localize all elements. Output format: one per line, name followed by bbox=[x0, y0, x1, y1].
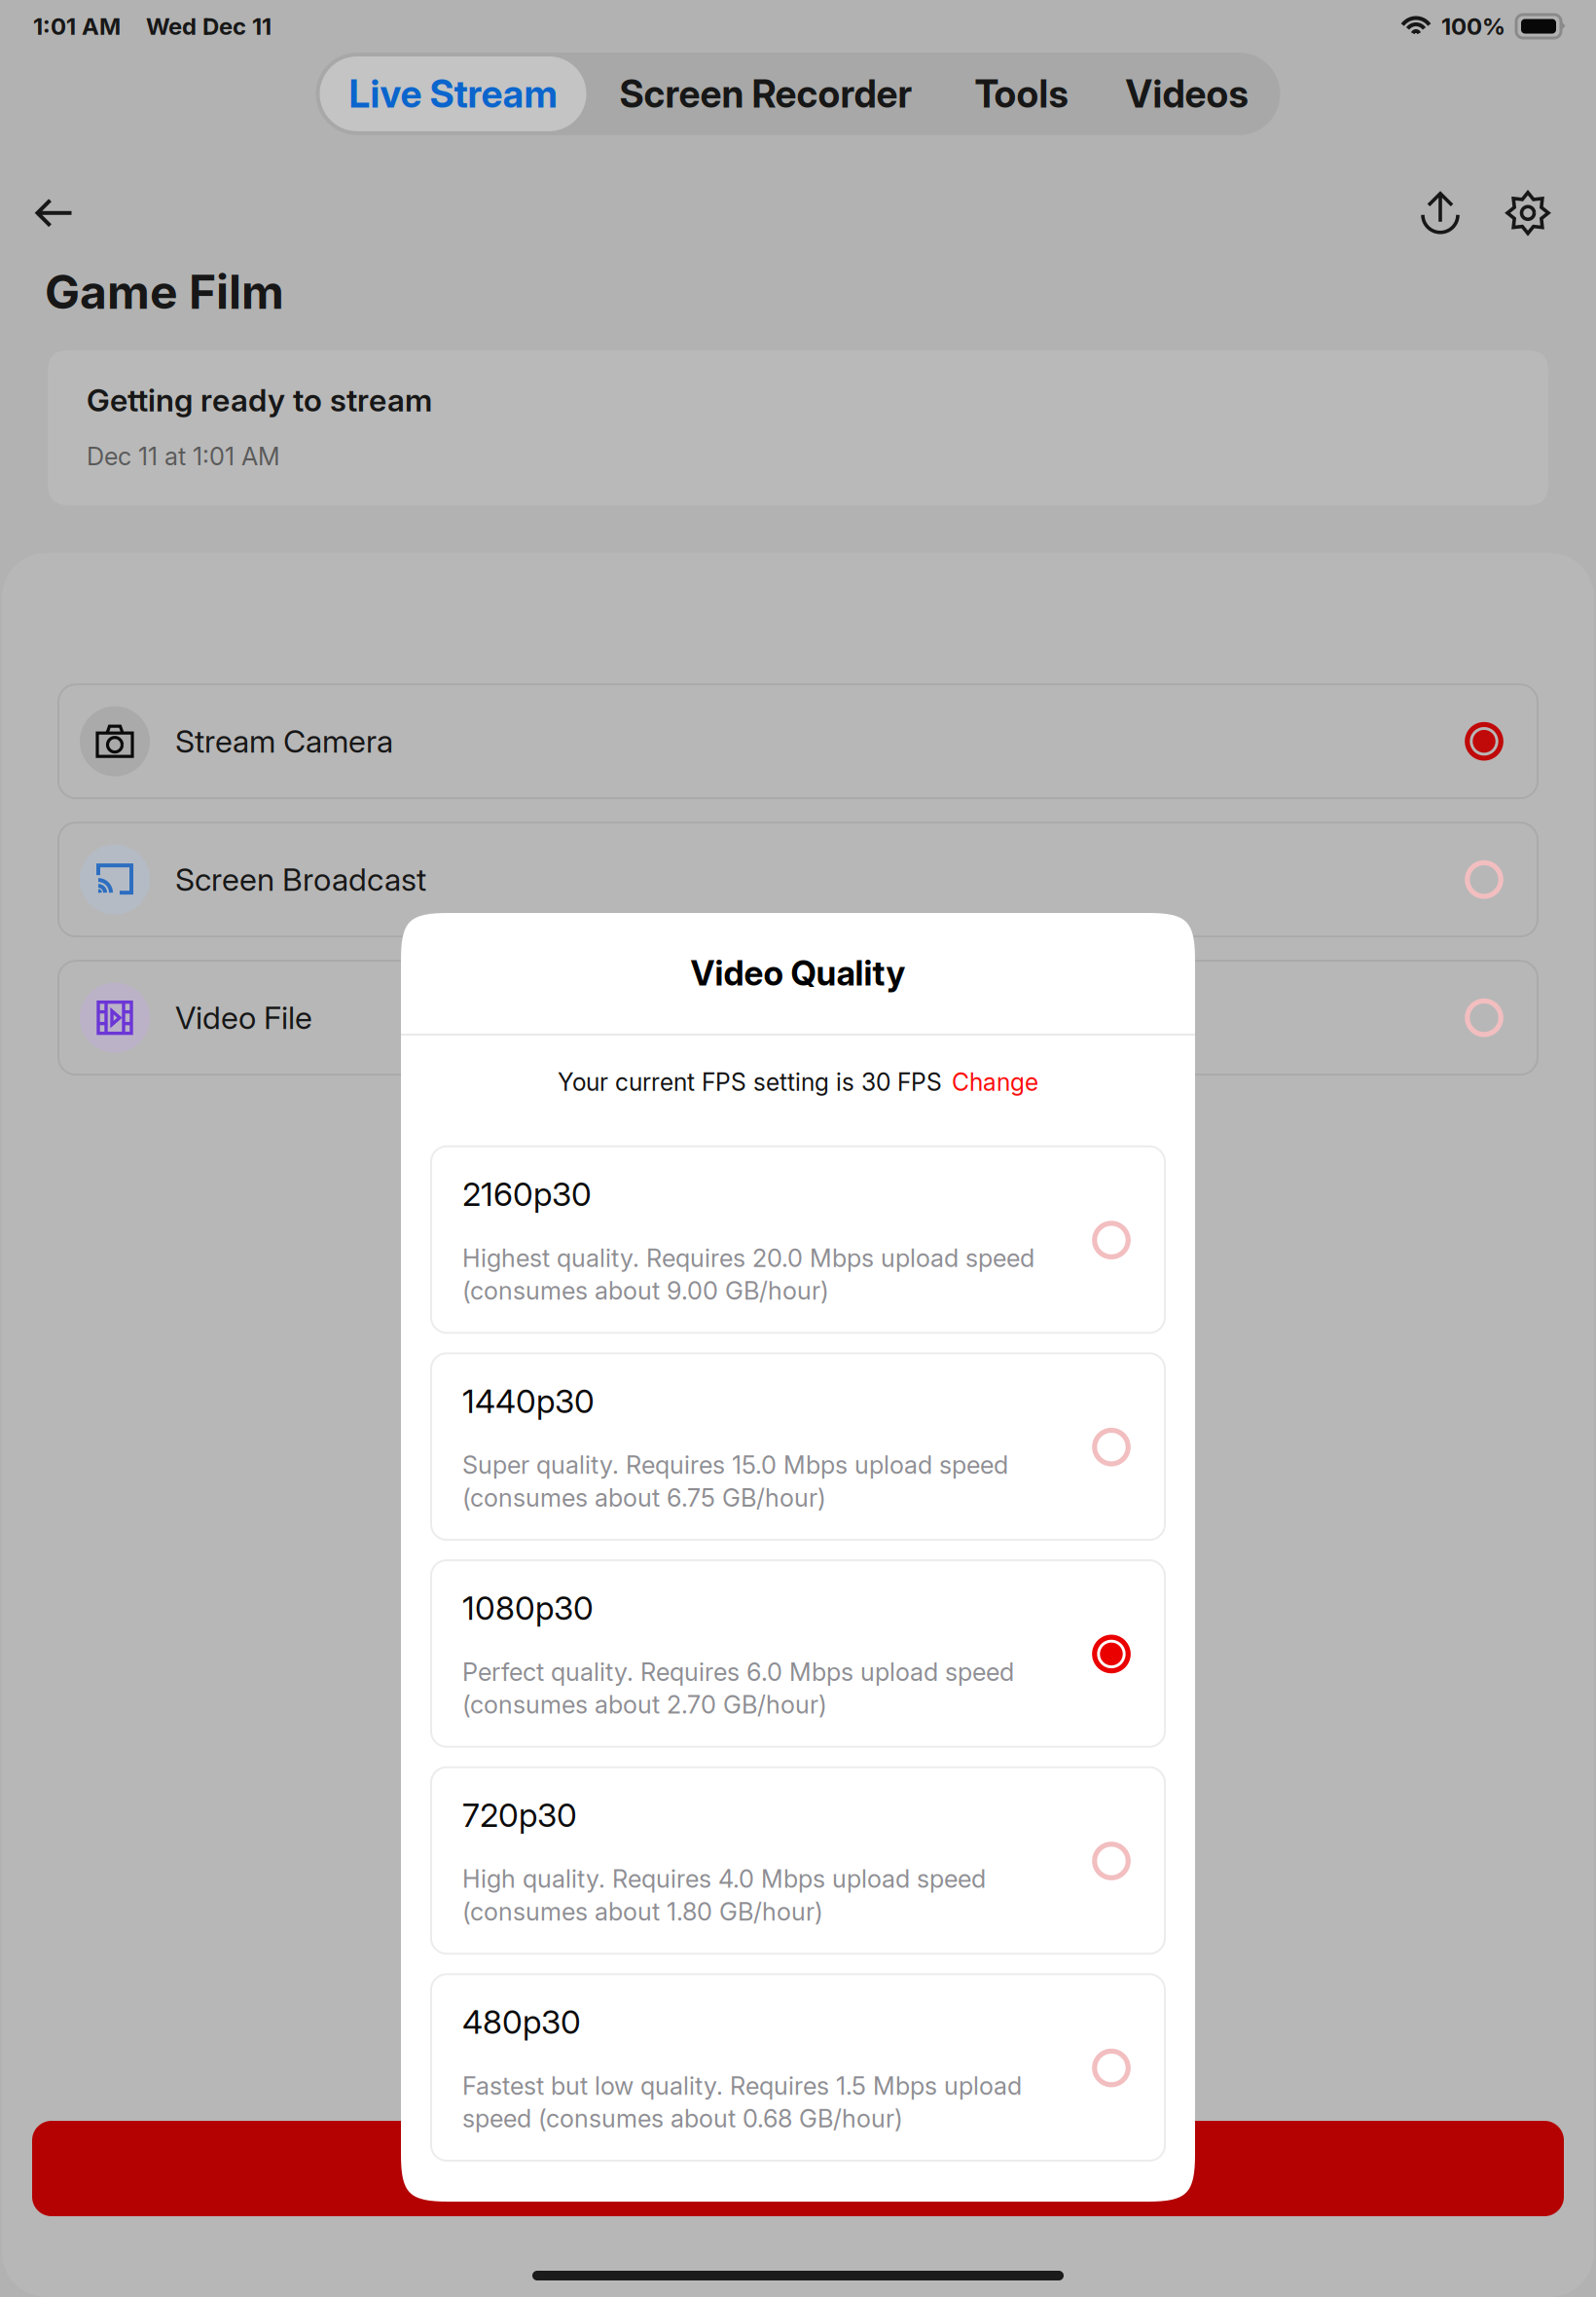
staticText: Screen Recorder bbox=[619, 71, 912, 117]
button[interactable]: Tools bbox=[945, 56, 1097, 131]
staticText: Videos bbox=[1125, 71, 1248, 117]
staticText: 1:01 AM bbox=[33, 12, 121, 40]
button[interactable]: 480p30 bbox=[431, 1974, 1165, 2161]
staticText: Dec 11 at 1:01 AM bbox=[87, 441, 280, 471]
button[interactable]: Screen Recorder bbox=[586, 56, 945, 131]
button[interactable]: Back bbox=[27, 186, 82, 240]
staticText: Wed Dec 11 bbox=[146, 12, 272, 40]
button[interactable] bbox=[0, 2121, 1596, 2216]
button[interactable]: Share bbox=[1413, 186, 1468, 240]
staticText: Highest quality. Requires 20.0 Mbps uplo… bbox=[462, 1243, 1034, 1273]
staticText: 2160p30 bbox=[462, 1175, 592, 1214]
staticText: Your current FPS setting is 30 FPS bbox=[558, 1068, 942, 1097]
button[interactable]: Screen Broadcast bbox=[58, 823, 1538, 937]
staticText: 1080p30 bbox=[462, 1589, 594, 1628]
staticText: Tools bbox=[975, 71, 1068, 117]
staticText: Stream Camera bbox=[175, 722, 393, 760]
button[interactable]: 2160p30 bbox=[431, 1146, 1165, 1333]
staticText: Video Quality bbox=[690, 953, 906, 994]
staticText: (consumes about 1.80 GB/hour) bbox=[462, 1897, 823, 1927]
staticText: 480p30 bbox=[462, 2002, 581, 2042]
button[interactable]: 1080p30 bbox=[431, 1560, 1165, 1747]
staticText: 1440p30 bbox=[462, 1382, 595, 1421]
staticText: 720p30 bbox=[462, 1795, 577, 1835]
button[interactable]: Videos bbox=[1097, 56, 1276, 131]
button[interactable]: Stream Camera bbox=[58, 684, 1538, 798]
staticText: Perfect quality. Requires 6.0 Mbps uploa… bbox=[462, 1657, 1014, 1687]
button[interactable]: Live Stream bbox=[320, 56, 586, 131]
button[interactable]: Change bbox=[942, 1068, 1038, 1097]
staticText: (consumes about 6.75 GB/hour) bbox=[462, 1483, 826, 1513]
staticText: (consumes about 2.70 GB/hour) bbox=[462, 1690, 827, 1720]
staticText: Super quality. Requires 15.0 Mbps upload… bbox=[462, 1450, 1008, 1480]
staticText: High quality. Requires 4.0 Mbps upload s… bbox=[462, 1864, 986, 1894]
button[interactable]: Settings bbox=[1468, 186, 1555, 240]
staticText: Change bbox=[952, 1068, 1038, 1097]
button[interactable]: 720p30 bbox=[431, 1767, 1165, 1954]
staticText: Screen Broadcast bbox=[175, 861, 426, 898]
staticText: speed (consumes about 0.68 GB/hour) bbox=[462, 2104, 903, 2133]
staticText: Getting ready to stream bbox=[87, 381, 432, 419]
button[interactable]: Video File bbox=[58, 961, 1538, 1075]
staticText: Video File bbox=[175, 999, 312, 1037]
staticText: 100% bbox=[1441, 12, 1505, 40]
staticText: (consumes about 9.00 GB/hour) bbox=[462, 1276, 829, 1306]
staticText: Game Film bbox=[45, 264, 284, 320]
button[interactable]: 1440p30 bbox=[431, 1353, 1165, 1540]
staticText: Fastest but low quality. Requires 1.5 Mb… bbox=[462, 2071, 1022, 2101]
staticText: Live Stream bbox=[349, 71, 557, 117]
